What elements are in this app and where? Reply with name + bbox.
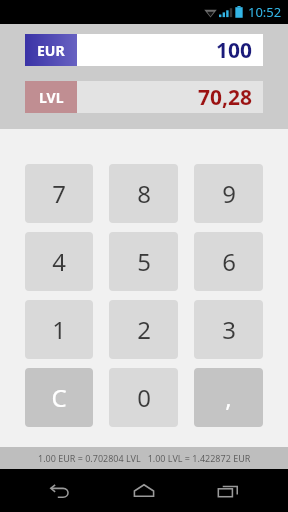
button[interactable]: 3 [194,300,263,359]
button[interactable]: LVL [25,81,263,113]
button[interactable]: Recents [204,469,252,512]
staticText: EUR [37,41,65,60]
button[interactable]: 9 [194,164,263,223]
staticText: 100 [216,36,253,65]
staticText: 8 [137,177,151,210]
staticText: 5 [137,245,151,278]
button[interactable]: EUR [25,34,263,66]
staticText: 9 [222,177,236,210]
staticText: 1 [52,313,66,346]
button[interactable]: 6 [194,232,263,291]
button[interactable]: 4 [25,232,93,291]
staticText: 7 [52,177,66,210]
staticText: LVL [39,88,64,107]
staticText: 2 [137,313,151,346]
button[interactable]: Home [120,469,168,512]
staticText: 0 [137,381,151,414]
button[interactable]: 7 [25,164,93,223]
staticText: 70,28 [198,83,253,112]
staticText: , [225,381,232,414]
button[interactable]: 0 [109,368,178,427]
button[interactable]: Back [36,469,84,512]
staticText: 1.00 EUR = 0.702804 LVL 1.00 LVL = 1.422… [38,452,251,464]
staticText: 4 [52,245,66,278]
button[interactable]: 1 [25,300,93,359]
button[interactable]: C [25,368,93,427]
button[interactable]: 2 [109,300,178,359]
staticText: 3 [222,313,236,346]
staticText: 10:52 [248,3,282,21]
button[interactable]: 8 [109,164,178,223]
button[interactable]: , [194,368,263,427]
staticText: C [51,381,67,414]
button[interactable]: 5 [109,232,178,291]
staticText: 6 [222,245,236,278]
